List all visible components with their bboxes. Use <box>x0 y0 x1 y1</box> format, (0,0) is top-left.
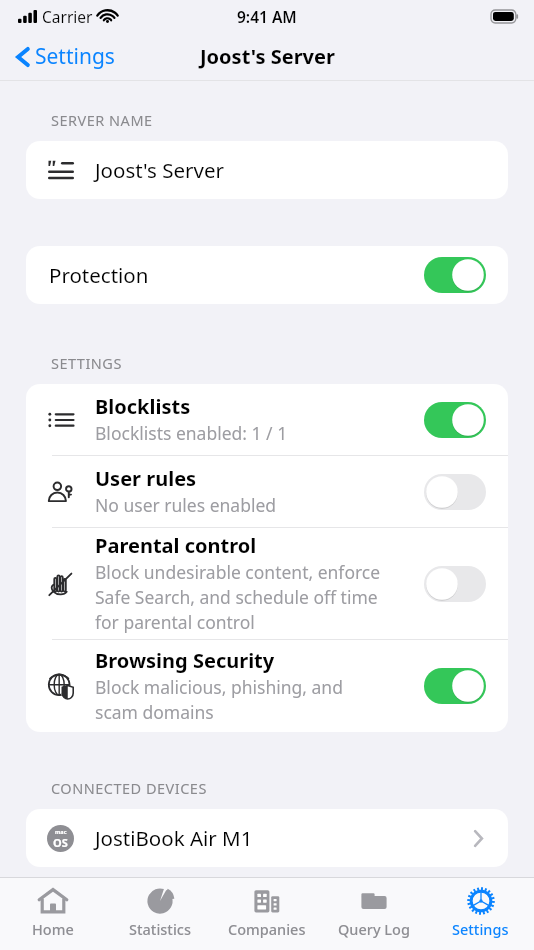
staticText: JostiBook Air M1 <box>95 824 253 852</box>
staticText: Blocklists <box>95 393 191 420</box>
staticText: Protection <box>49 261 149 289</box>
button[interactable]: On <box>424 257 486 293</box>
button[interactable]: Off <box>424 566 486 602</box>
staticText: Block malicious, phishing, and <box>95 675 343 699</box>
staticText: scam domains <box>95 700 214 724</box>
staticText: Safe Search, and schedule off time <box>95 585 378 609</box>
staticText: Query Log <box>338 919 410 939</box>
staticText: Settings <box>452 919 509 939</box>
staticText: Blocklists enabled: 1 / 1 <box>95 421 288 445</box>
button[interactable]: Companies <box>213 878 320 950</box>
button[interactable]: Off <box>424 474 486 510</box>
button[interactable]: Joost's Server <box>26 141 508 199</box>
staticText: mac <box>55 828 67 835</box>
staticText: User rules <box>95 465 197 492</box>
button[interactable]: Blocklists <box>26 384 508 455</box>
button[interactable]: On <box>424 668 486 704</box>
staticText: Joost's Server <box>200 43 335 70</box>
staticText: Home <box>32 919 74 939</box>
staticText: for parental control <box>95 610 255 634</box>
button[interactable]: Statistics <box>106 878 213 950</box>
staticText: OS <box>53 835 68 850</box>
button[interactable]: Protection <box>26 246 508 304</box>
staticText: SERVER NAME <box>51 110 153 130</box>
button[interactable]: Home <box>0 878 106 950</box>
staticText: Companies <box>228 919 306 939</box>
button[interactable]: Query Log <box>320 878 427 950</box>
button[interactable]: Browsing Security <box>26 640 508 732</box>
button[interactable]: Settings <box>427 878 534 950</box>
button[interactable]: Settings <box>10 38 121 75</box>
button[interactable]: User rules <box>26 456 508 527</box>
button[interactable]: On <box>424 402 486 438</box>
button[interactable]: mac <box>26 809 508 867</box>
staticText: CONNECTED DEVICES <box>51 778 207 798</box>
staticText: Block undesirable content, enforce <box>95 560 381 584</box>
staticText: SETTINGS <box>51 353 122 373</box>
staticText: No user rules enabled <box>95 493 277 517</box>
staticText: Settings <box>35 42 115 71</box>
staticText: Browsing Security <box>95 647 275 674</box>
staticText: Carrier <box>42 6 93 27</box>
staticText: Statistics <box>129 919 191 939</box>
staticText: 9:41 AM <box>237 6 297 27</box>
staticText: Parental control <box>95 532 257 559</box>
button[interactable]: Parental control <box>26 528 508 639</box>
staticText: Joost's Server <box>95 156 224 184</box>
